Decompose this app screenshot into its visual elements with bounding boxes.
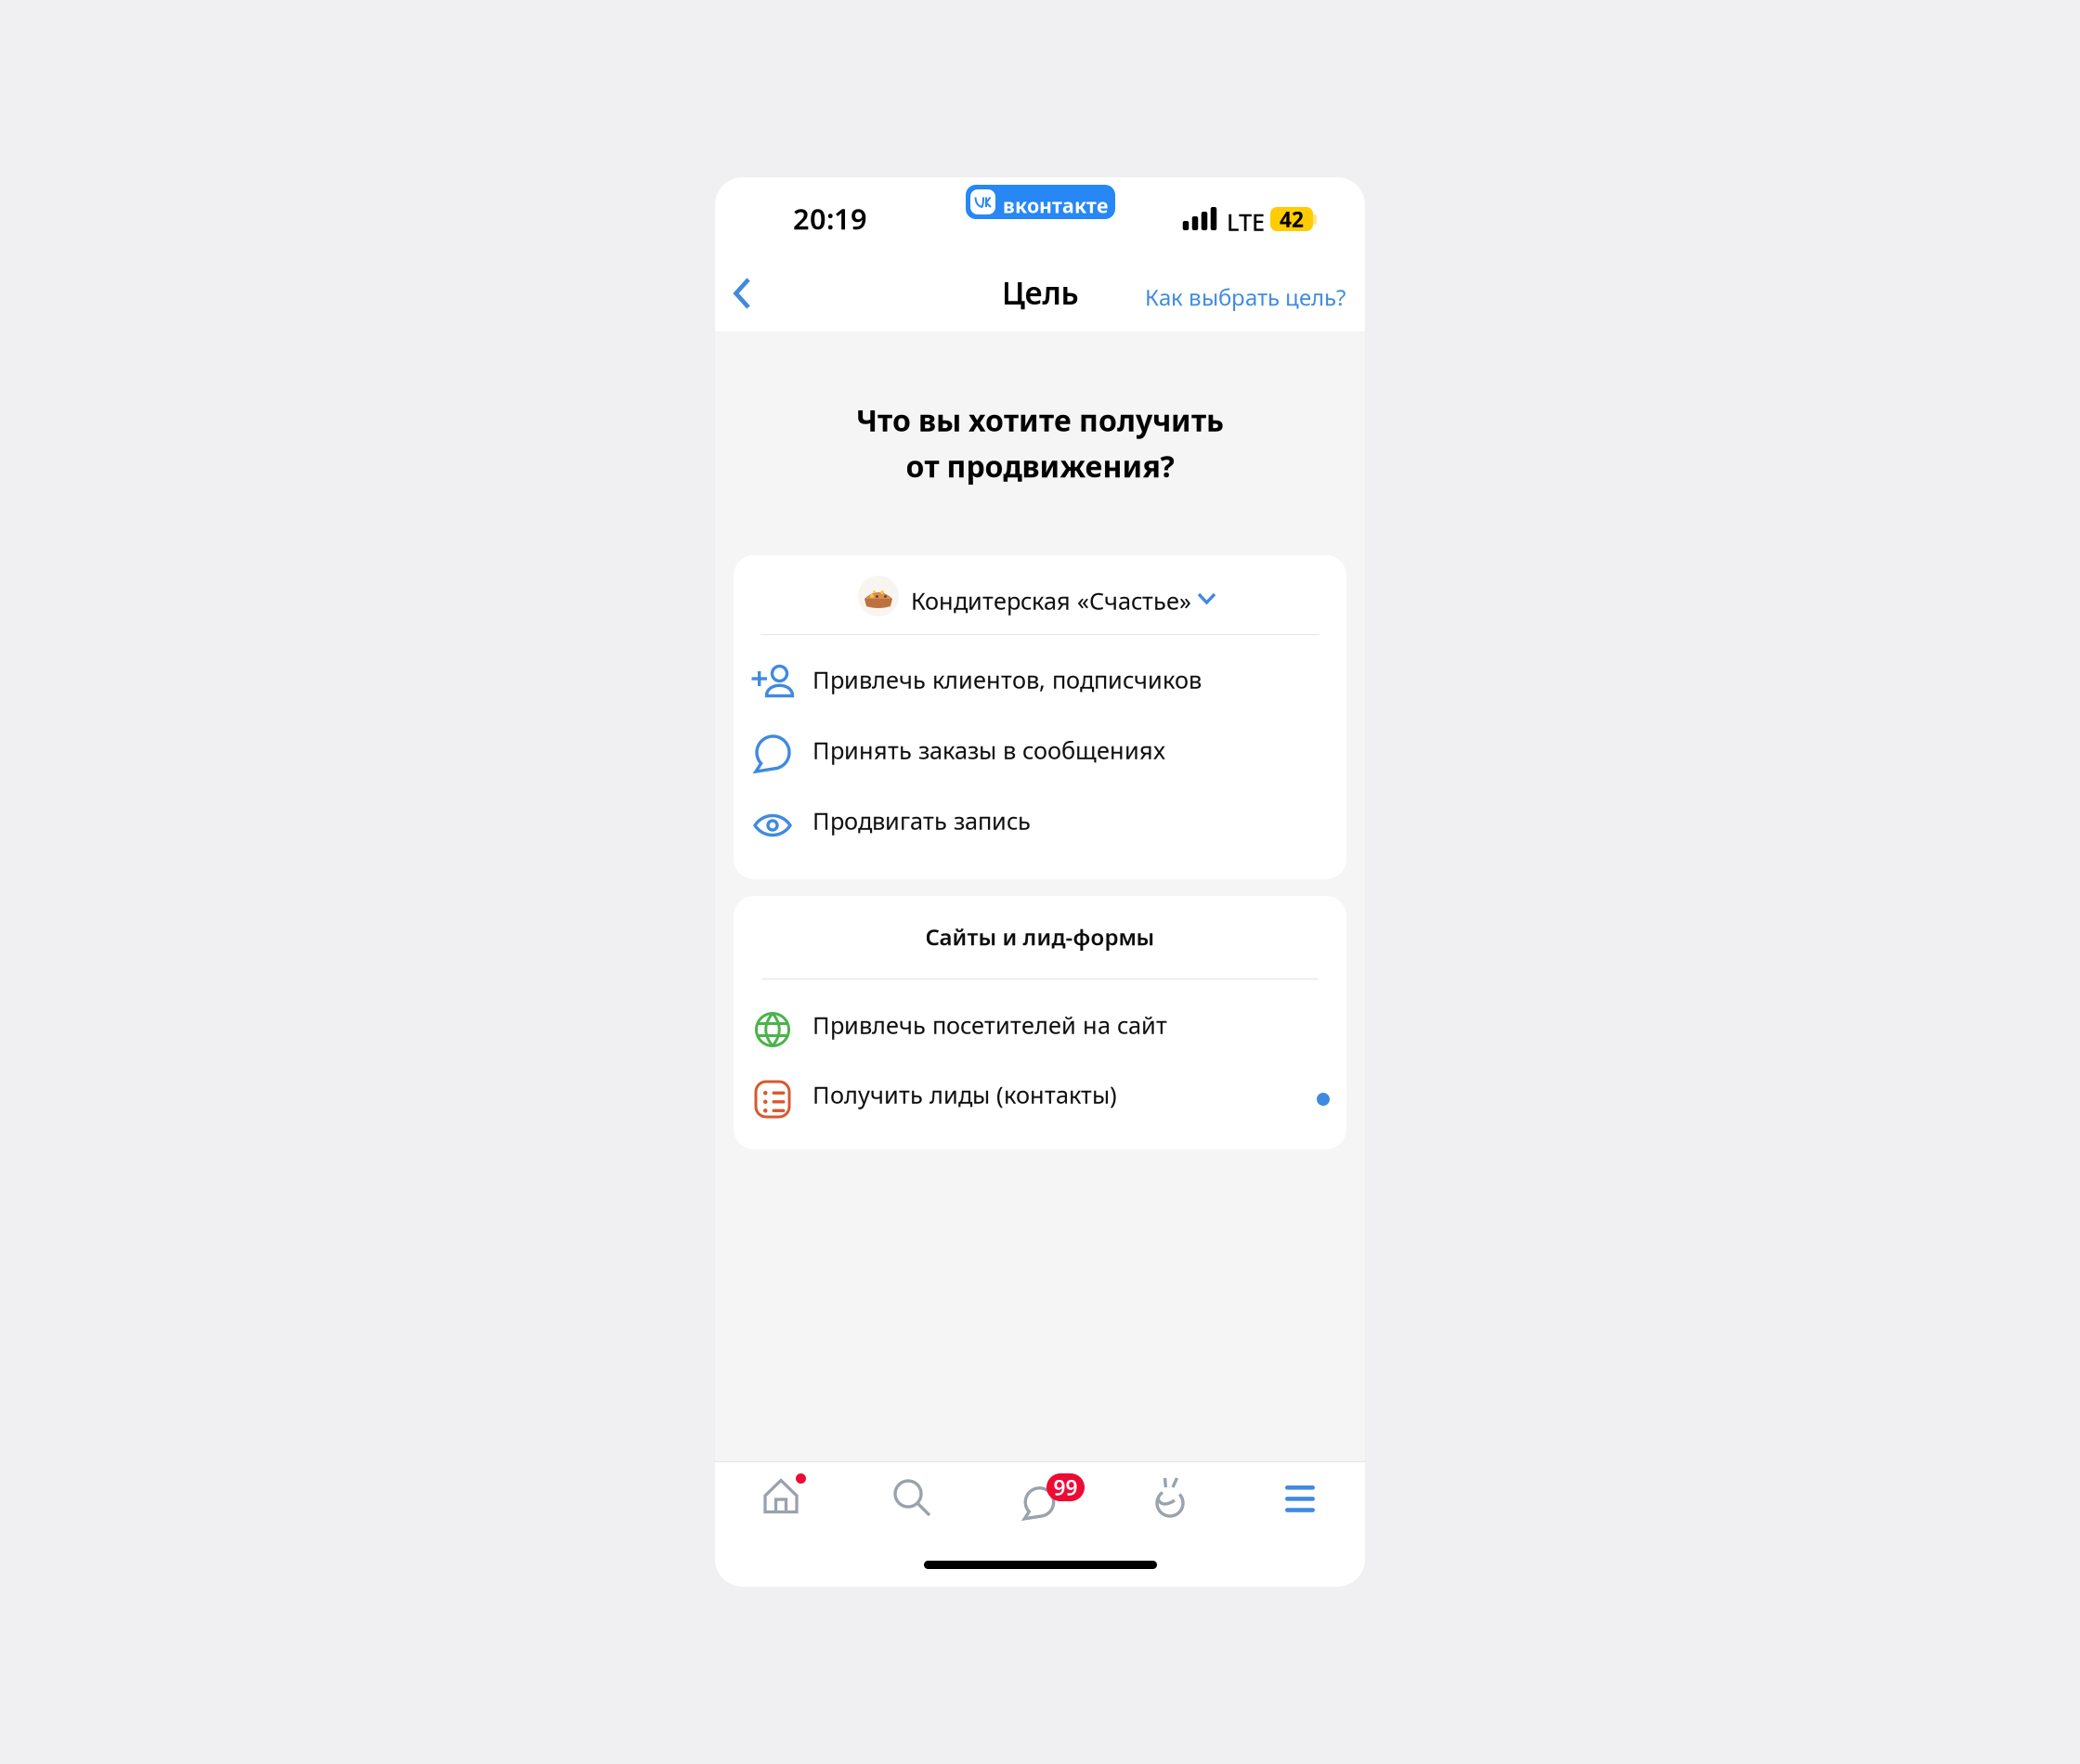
staticText: Сайты и лид-формы [925, 922, 1155, 952]
button[interactable]: Принять заказы в сообщениях [734, 720, 1346, 790]
staticText: Привлечь клиентов, подписчиков [812, 664, 1202, 695]
button[interactable]: Кондитерская «Счастье» [734, 555, 1346, 636]
staticText: вконтакте [1003, 192, 1108, 218]
staticText: Получить лиды (контакты) [812, 1079, 1117, 1110]
button[interactable]: Как выбрать цель? [1124, 259, 1352, 326]
button[interactable]: Продвигать запись [734, 790, 1346, 861]
staticText: Цель [1001, 272, 1079, 313]
staticText: Продвигать запись [812, 805, 1031, 836]
staticText: Принять заказы в сообщениях [812, 734, 1165, 766]
staticText: от продвижения? [906, 446, 1174, 486]
staticText: Как выбрать цель? [1145, 282, 1345, 312]
button[interactable]: Получить лиды (контакты) [734, 1064, 1346, 1135]
staticText: Кондитерская «Счастье» [911, 585, 1191, 616]
button[interactable]: Messages [983, 1465, 1095, 1530]
button[interactable]: Menu [1243, 1465, 1355, 1530]
staticText: 42 [1280, 205, 1304, 233]
button[interactable]: Привлечь клиентов, подписчиков [734, 649, 1346, 720]
button[interactable]: Home [725, 1465, 837, 1530]
button[interactable]: Back [715, 259, 780, 326]
staticText: 20:19 [793, 200, 867, 237]
button[interactable]: Search [855, 1465, 967, 1530]
staticText: LTE [1227, 206, 1265, 237]
button[interactable]: Clips [1111, 1465, 1223, 1530]
staticText: 99 [1053, 1473, 1078, 1501]
staticText: Привлечь посетителей на сайт [812, 1009, 1167, 1040]
button[interactable]: Привлечь посетителей на сайт [734, 994, 1346, 1065]
staticText: Что вы хотите получить [856, 400, 1224, 440]
